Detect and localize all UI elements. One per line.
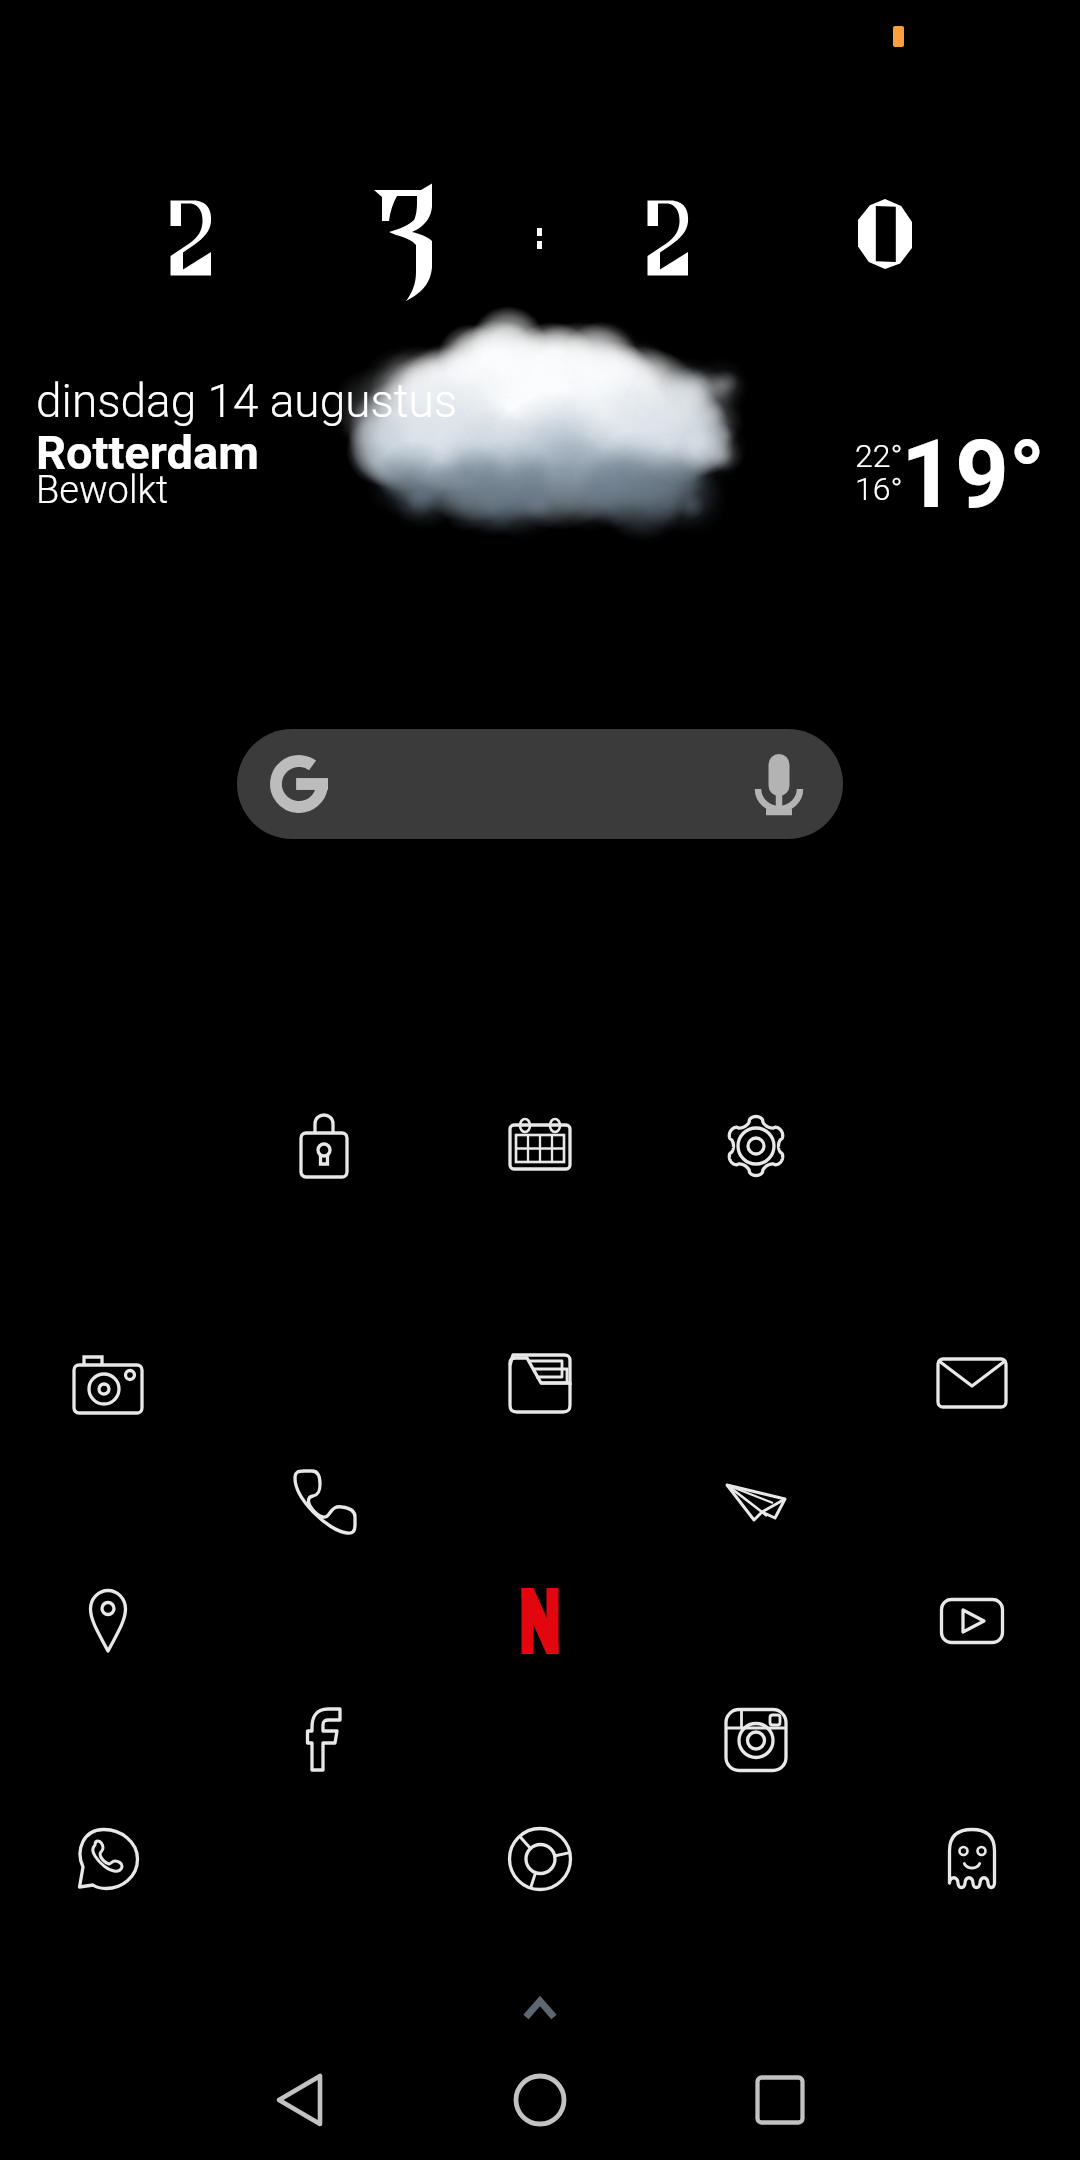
button[interactable]: Recent apps [720,2040,840,2160]
button[interactable]: Telegram [702,1448,810,1556]
staticText: 22° [855,437,903,475]
button[interactable]: YouTube [918,1567,1026,1675]
staticText: Bewolkt [36,468,169,513]
staticText: Rotterdam [36,425,259,480]
button[interactable]: Open app drawer [500,1972,580,2032]
button[interactable]: Maps [54,1567,162,1675]
button[interactable]: Calendar [486,1092,594,1200]
button[interactable]: Settings [702,1092,810,1200]
button[interactable]: Home [480,2040,600,2160]
button[interactable]: Back [240,2040,360,2160]
button[interactable]: Files [486,1329,594,1437]
button[interactable]: WhatsApp [54,1805,162,1913]
button[interactable]: Snapchat [918,1805,1026,1913]
button[interactable]: Mail [918,1329,1026,1437]
button[interactable]: Chrome [486,1805,594,1913]
staticText: dinsdag 14 augustus [36,374,458,428]
button[interactable]: Phone [270,1448,378,1556]
button[interactable]: Search [237,729,843,839]
button[interactable]: Camera [54,1329,162,1437]
staticText: 19° [901,420,1046,530]
button[interactable]: Instagram [702,1686,810,1794]
button[interactable]: Lock [270,1092,378,1200]
button[interactable]: Facebook [270,1686,378,1794]
staticText: 16° [855,470,903,508]
button[interactable]: Netflix [486,1567,594,1675]
